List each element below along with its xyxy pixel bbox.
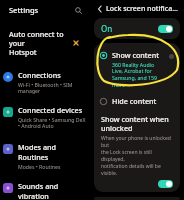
staticText: Modes • Routines — [18, 163, 61, 170]
button[interactable]: Show content when unlocked — [94, 114, 180, 192]
staticText: Sounds and vibration — [18, 181, 86, 199]
button[interactable]: Modes and Routines — [0, 141, 90, 171]
staticText: On — [101, 23, 113, 34]
staticText: Lock screen notificati... — [106, 4, 180, 14]
button[interactable]: Back — [94, 3, 106, 15]
button[interactable]: Connected devices — [0, 104, 90, 131]
staticText: Show content when unlocked — [101, 114, 169, 133]
button[interactable]: Connections — [0, 69, 90, 96]
staticText: Settings — [9, 5, 39, 15]
staticText: Connections — [18, 70, 61, 80]
staticText: Modes and Routines — [18, 142, 86, 162]
button[interactable]: On — [94, 18, 180, 39]
staticText: Show content — [112, 50, 159, 60]
button[interactable]: Show content — [94, 49, 180, 90]
button[interactable]: Sounds and vibration — [0, 180, 90, 200]
staticText: 360 Reality Audio Live, Acrobat for Sams… — [112, 61, 157, 89]
staticText: Auto connect to your Hotspot — [9, 29, 71, 57]
staticText: When your phone is unlocked but the Lock… — [101, 135, 173, 177]
button[interactable]: Search settings — [72, 4, 84, 16]
button[interactable]: Auto connect to your Hotspot — [5, 26, 85, 60]
staticText: Wi-Fi • Bluetooth • SIM manager — [18, 81, 73, 95]
staticText: Hide content — [112, 96, 157, 106]
staticText: Quick Share • Samsung DeX • Android Auto — [18, 116, 86, 130]
button[interactable]: Toggle — [158, 180, 173, 188]
button[interactable]: Hide content — [94, 95, 180, 107]
button[interactable]: Toggle — [158, 25, 173, 33]
staticText: Connected devices — [18, 105, 83, 115]
